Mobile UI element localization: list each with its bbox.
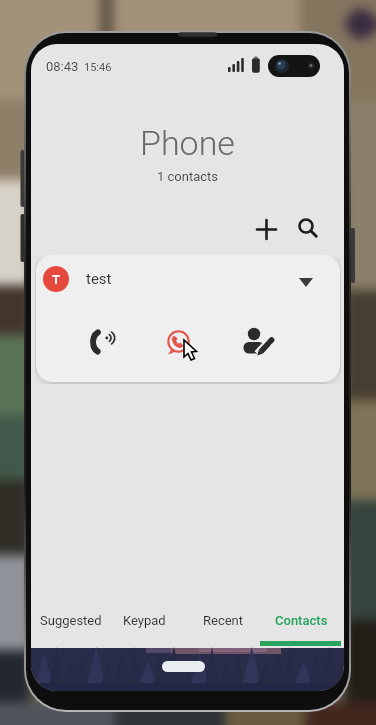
button[interactable] — [162, 661, 205, 672]
button[interactable]: Contacts — [265, 604, 338, 636]
button[interactable]: Keypad — [108, 604, 181, 636]
button[interactable] — [292, 212, 324, 244]
staticText: 1 contacts — [157, 169, 219, 184]
staticText: Keypad — [123, 613, 166, 628]
button[interactable]: T — [43, 266, 340, 292]
button[interactable] — [243, 327, 273, 357]
staticText: test — [86, 270, 112, 288]
staticText: 15:46 — [84, 61, 112, 74]
button[interactable]: Suggested — [34, 604, 107, 636]
staticText: Recent — [203, 613, 244, 628]
staticText: T — [52, 272, 61, 287]
staticText: Phone — [140, 123, 235, 163]
staticText: Suggested — [40, 613, 102, 628]
button[interactable]: Recent — [187, 604, 260, 636]
button[interactable] — [164, 328, 192, 356]
staticText: 08:43 — [46, 59, 79, 74]
button[interactable] — [250, 213, 282, 245]
button[interactable] — [87, 327, 117, 357]
staticText: Contacts — [275, 613, 328, 628]
